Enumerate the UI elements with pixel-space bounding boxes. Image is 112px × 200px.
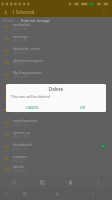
staticText: smartlauncher: [13, 118, 38, 123]
staticText: 2014-11-05: [13, 27, 28, 31]
button[interactable]: Select nubiamusic: [94, 80, 112, 92]
staticText: system_xy: [13, 130, 31, 135]
button[interactable]: OK: [58, 103, 106, 112]
staticText: OK: [80, 105, 85, 110]
button[interactable]: thumbnails: [0, 140, 112, 152]
button[interactable]: amakakkb: [0, 20, 112, 32]
staticText: 2014-09-13: [13, 169, 28, 173]
staticText: 2014-11-05: [13, 147, 28, 151]
button[interactable]: Mp3heyguardian: [0, 68, 112, 80]
staticText: This item will be deleted.: [11, 94, 51, 99]
button[interactable]: Select all: [96, 7, 112, 17]
button[interactable]: Delete: [56, 176, 84, 188]
staticText: qiyivideo: [13, 94, 29, 99]
staticText: Internal storage: [21, 18, 50, 23]
button[interactable]: Phone: [2, 17, 16, 23]
button[interactable]: CANCEL: [6, 103, 58, 112]
staticText: Phone: [3, 18, 15, 23]
button[interactable]: system_xy: [0, 128, 112, 140]
staticText: 2014-11-05: [13, 39, 28, 43]
staticText: Delete: [6, 86, 106, 92]
staticText: 2014-11-05: [13, 135, 28, 139]
button[interactable]: Select qiyivideo: [94, 92, 112, 104]
button[interactable]: txtcdb: [0, 164, 112, 173]
staticText: 2014-09-13: [13, 63, 28, 67]
staticText: Mp3heyguardian: [13, 70, 42, 75]
staticText: 2014-11-05: [13, 51, 28, 55]
button[interactable]: astrongs: [0, 32, 112, 44]
button[interactable]: smartlauncher: [0, 116, 112, 128]
staticText: globalmobogame: [13, 58, 43, 63]
button[interactable]: Back: [89, 188, 97, 200]
button[interactable]: globalmobogame: [0, 56, 112, 68]
button[interactable]: Select thumbnails: [94, 140, 112, 152]
button[interactable]: Select screenshots: [94, 104, 112, 116]
button[interactable]: Hide keyboard: [3, 188, 11, 200]
staticText: thumbnails: [13, 142, 33, 147]
button[interactable]: Back: [0, 7, 10, 17]
button[interactable]: Home: [53, 188, 61, 200]
button[interactable]: qiyivideo: [0, 92, 112, 104]
button[interactable]: screenshots: [0, 104, 112, 116]
staticText: 2014-04-11: [13, 159, 28, 163]
button[interactable]: Share: [0, 176, 28, 188]
button[interactable]: transton: [0, 152, 112, 164]
staticText: transton: [13, 154, 28, 159]
staticText: CANCEL: [26, 105, 39, 110]
staticText: amakakkb: [13, 22, 31, 27]
staticText: txtcdb: [13, 164, 24, 169]
staticText: 2014-11-05: [13, 123, 28, 127]
staticText: 2014-11-05: [13, 111, 28, 115]
button[interactable]: Move: [28, 176, 56, 188]
button[interactable]: Internal storage: [20, 17, 51, 23]
staticText: 2014-09-13: [13, 75, 28, 79]
staticText: nubiamusic: [13, 82, 33, 87]
staticText: 1 Selected: [12, 9, 35, 15]
button[interactable]: nubiamusic: [0, 80, 112, 92]
button[interactable]: facebook_cache: [0, 44, 112, 56]
button[interactable]: Recents: [21, 188, 29, 200]
staticText: astrongs: [13, 34, 28, 39]
staticText: screenshots: [13, 106, 34, 111]
staticText: facebook_cache: [13, 46, 40, 51]
